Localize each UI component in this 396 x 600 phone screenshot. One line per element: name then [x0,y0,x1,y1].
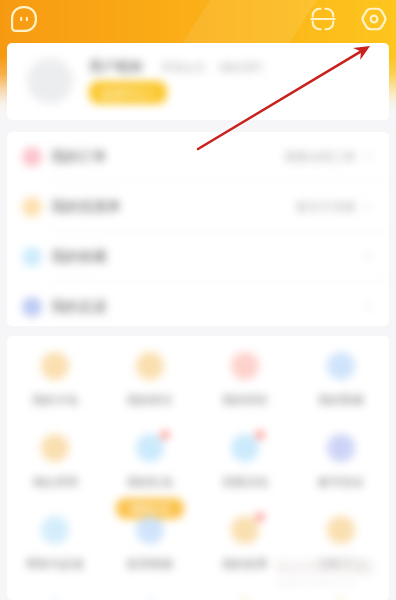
staticText: 账号安全 [318,475,364,489]
staticText: 普通会员 [161,60,205,74]
staticText: 我的客服 [318,393,364,407]
button[interactable]: 账号安全 [293,434,389,489]
staticText: 我的发票 [222,557,268,571]
staticText: 我的积分 [127,393,173,407]
button[interactable]: 我的收藏 [7,232,389,281]
button[interactable]: 地址管理 [7,434,102,489]
button[interactable]: 我的红包 [102,434,197,489]
button[interactable]: 我的发票 [197,516,293,571]
staticText: 我的收藏 [51,248,107,266]
staticText: 优惠活动 [222,475,268,489]
staticText: 领取红包 [130,502,170,515]
button[interactable] [7,43,389,120]
staticText: 我的评价 [222,393,268,407]
button[interactable]: 帮助与反馈 [7,516,102,571]
staticText: 我的卡包 [32,393,78,407]
button[interactable]: 设置中心 [293,516,389,571]
staticText: 编辑资料 [219,60,263,74]
staticText: 暂无可用券 [296,199,356,214]
button[interactable]: 会员中心 > [89,81,167,104]
button[interactable]: 我的评价 [197,352,293,407]
button[interactable]: 我的订单 [7,132,389,181]
staticText: 我的足迹 [51,298,107,316]
staticText: 地址管理 [32,475,78,489]
staticText: Baidu 经验 [276,553,373,579]
button[interactable]: 领取红包 [116,498,184,519]
button[interactable]: 我的卡包 [7,352,102,407]
staticText: 我的优惠券 [51,198,121,216]
button[interactable]: 联系客服 [102,516,197,571]
staticText: 设置中心 [318,557,364,571]
button[interactable]: Scan QR code [310,6,336,32]
button[interactable]: 我的积分 [102,352,197,407]
button[interactable]: 优惠活动 [197,434,293,489]
staticText: 联系客服 [127,557,173,571]
button[interactable]: Messages [11,6,37,32]
button[interactable]: 我的客服 [293,352,389,407]
staticText: 我的红包 [127,475,173,489]
staticText: 我的订单 [51,148,107,166]
button[interactable]: Settings [361,6,387,32]
button[interactable]: 我的足迹 [7,282,389,331]
staticText: 查看全部订单 [284,149,356,164]
staticText: 帮助与反馈 [26,557,84,571]
staticText: 用户昵称 [89,58,143,75]
staticText: 会员中心 > [101,85,155,100]
button[interactable]: 我的优惠券 [7,182,389,231]
